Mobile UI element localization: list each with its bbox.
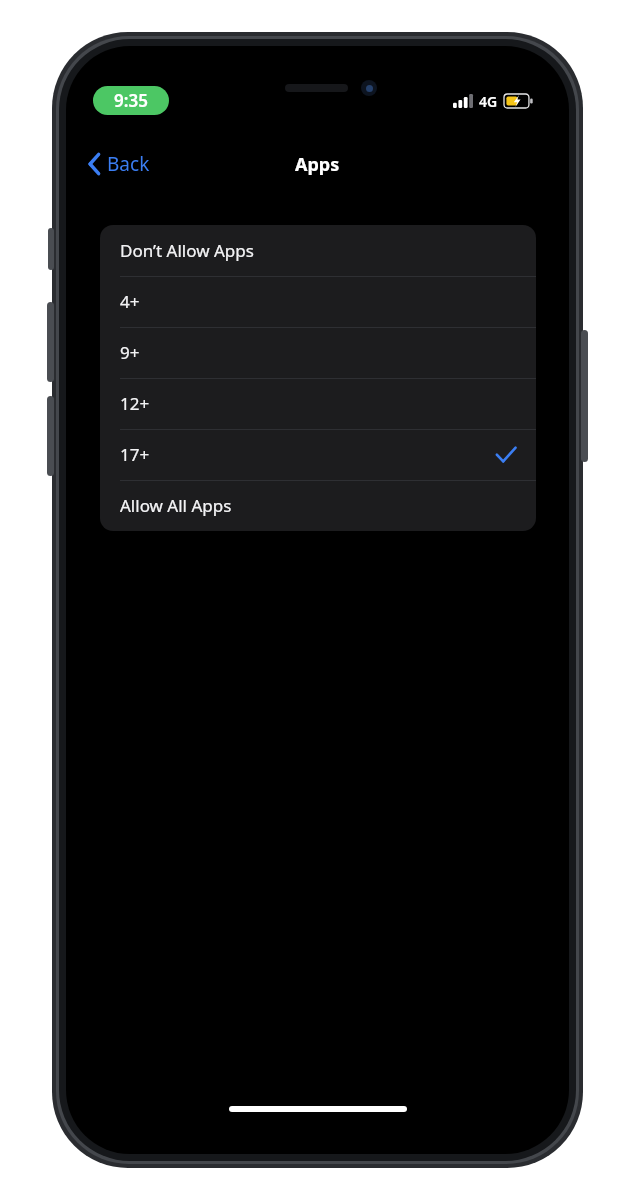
button[interactable]: 9+ [100,327,536,378]
staticText: Don’t Allow Apps [120,239,254,262]
button[interactable]: Back [84,145,154,183]
staticText: 4G [479,92,498,111]
button[interactable]: Allow All Apps [100,480,536,531]
staticText: Back [107,151,150,177]
button[interactable]: 17+ [100,429,536,480]
other: Cellular signal strength [453,94,473,108]
button[interactable]: 4+ [100,276,536,327]
button[interactable]: 12+ [100,378,536,429]
staticText: 17+ [120,443,150,466]
staticText: 9+ [120,341,140,364]
other: Battery charging, low power mode [504,94,533,108]
button[interactable]: Don’t Allow Apps [100,225,536,276]
staticText: Allow All Apps [120,494,232,517]
staticText: 12+ [120,392,150,415]
staticText: Apps [295,152,340,177]
staticText: 4+ [120,290,140,313]
staticText: 9:35 [114,89,148,112]
